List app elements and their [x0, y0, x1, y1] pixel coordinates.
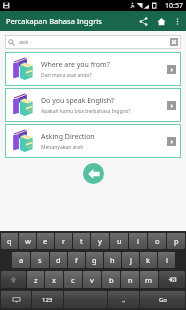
staticText: r: [62, 236, 66, 246]
button[interactable]: q: [1, 233, 18, 249]
staticText: u: [117, 236, 122, 246]
button[interactable]: Open conversation: [167, 65, 176, 74]
button[interactable]: a: [12, 252, 30, 268]
staticText: l: [166, 255, 168, 265]
button[interactable]: j: [122, 252, 139, 268]
staticText: Percakapan Bahasa Inggris: [6, 16, 102, 26]
button[interactable]: g: [86, 252, 103, 268]
staticText: g: [92, 255, 97, 265]
button[interactable]: Do you speak English?: [5, 88, 181, 122]
button[interactable]: u: [110, 233, 128, 249]
button[interactable]: Shift: [1, 271, 26, 288]
button[interactable]: x: [45, 271, 63, 288]
staticText: Asking Direction: [41, 132, 95, 142]
staticText: w: [25, 236, 31, 246]
staticText: p: [174, 236, 179, 246]
button[interactable]: More options: [170, 14, 184, 28]
staticText: Dari mana asal anda?: [41, 72, 92, 79]
button[interactable]: b: [102, 271, 120, 288]
button[interactable]: Open conversation: [167, 101, 176, 110]
button[interactable]: l: [158, 252, 175, 268]
button[interactable]: r: [55, 233, 72, 249]
button[interactable]: n: [121, 271, 139, 288]
staticText: v: [90, 275, 94, 285]
staticText: y: [98, 236, 102, 246]
staticText: 10:57: [165, 1, 183, 11]
button[interactable]: h: [104, 252, 121, 268]
button[interactable]: Asking Direction: [5, 124, 181, 158]
staticText: Menanyakan arah: [41, 144, 84, 151]
staticText: .,: [122, 296, 126, 304]
button[interactable]: p: [167, 233, 185, 249]
button[interactable]: 123: [32, 291, 63, 308]
button[interactable]: Backspace: [159, 271, 185, 288]
staticText: j: [130, 255, 132, 265]
button[interactable]: Share: [134, 12, 152, 30]
button[interactable]: s: [31, 252, 49, 268]
staticText: Do you speak English?: [41, 96, 115, 106]
button[interactable]: Back: [83, 163, 104, 184]
button[interactable]: m: [140, 271, 158, 288]
button[interactable]: e: [37, 233, 54, 249]
staticText: Where are you from?: [41, 60, 110, 70]
staticText: ask: [19, 38, 29, 46]
staticText: Apakah kamu bisa berbahasa Inggris?: [41, 108, 131, 115]
button[interactable]: Go: [140, 291, 185, 308]
staticText: k: [146, 255, 151, 265]
button[interactable]: d: [50, 252, 67, 268]
button[interactable]: o: [148, 233, 166, 249]
button[interactable]: ask: [8, 35, 178, 49]
staticText: o: [155, 236, 160, 246]
staticText: m: [145, 275, 153, 285]
button[interactable]: w: [19, 233, 36, 249]
staticText: Go: [159, 296, 167, 304]
button[interactable]: Clear search: [170, 38, 178, 46]
staticText: h: [110, 255, 115, 265]
button[interactable]: y: [91, 233, 109, 249]
button[interactable]: f: [68, 252, 85, 268]
staticText: d: [56, 255, 61, 265]
staticText: i: [137, 236, 139, 246]
button[interactable]: c: [64, 271, 82, 288]
button[interactable]: k: [140, 252, 157, 268]
button[interactable]: Where are you from?: [5, 52, 181, 86]
staticText: x: [52, 275, 56, 285]
staticText: a: [19, 255, 24, 265]
staticText: c: [71, 275, 75, 285]
button[interactable]: v: [83, 271, 101, 288]
staticText: b: [109, 275, 114, 285]
button[interactable]: Home: [152, 12, 170, 30]
staticText: s: [38, 255, 42, 265]
staticText: f: [75, 255, 78, 265]
staticText: q: [7, 236, 12, 246]
button[interactable]: [64, 291, 107, 308]
staticText: e: [43, 236, 48, 246]
button[interactable]: .,: [108, 291, 139, 308]
button[interactable]: z: [27, 271, 44, 288]
button[interactable]: i: [129, 233, 147, 249]
staticText: z: [34, 275, 38, 285]
button[interactable]: Open conversation: [167, 137, 176, 146]
button[interactable]: t: [73, 233, 90, 249]
staticText: 123: [42, 296, 53, 304]
staticText: n: [128, 275, 133, 285]
button[interactable]: Switch keyboard: [1, 291, 31, 308]
staticText: t: [80, 236, 83, 246]
